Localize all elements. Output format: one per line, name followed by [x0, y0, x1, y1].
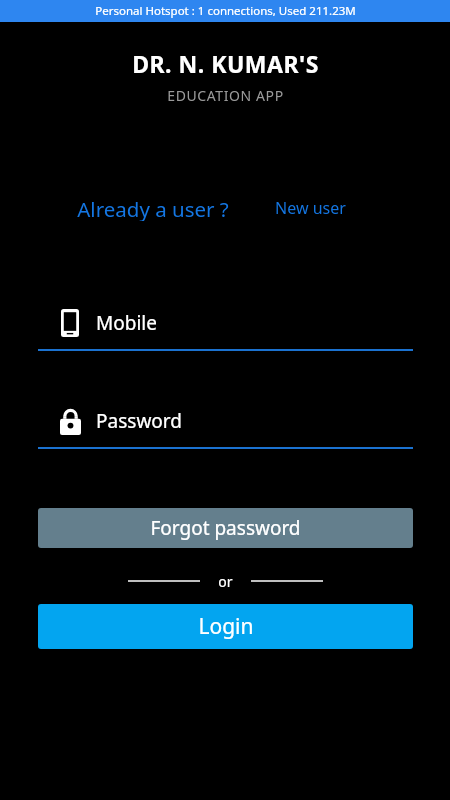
staticText: Personal Hotspot : 1 connections, Used 2… — [95, 3, 356, 19]
button[interactable]: Password — [38, 399, 413, 443]
staticText: Already a user ? — [77, 195, 229, 221]
button[interactable]: Already a user ? — [75, 191, 231, 225]
staticText: New user — [275, 197, 346, 219]
staticText: DR. N. KUMAR'S — [132, 48, 319, 79]
button[interactable]: Login — [38, 604, 413, 649]
other: Mobile number — [61, 309, 79, 337]
staticText: Password — [96, 408, 182, 434]
staticText: Forgot password — [150, 515, 301, 541]
staticText: Mobile — [96, 310, 157, 336]
button[interactable]: New user — [273, 193, 348, 223]
other: Password — [60, 408, 81, 435]
button[interactable]: Mobile number — [38, 301, 413, 345]
button[interactable]: Forgot password — [38, 508, 413, 548]
staticText: EDUCATION APP — [167, 86, 284, 105]
staticText: Login — [198, 612, 254, 641]
staticText: or — [218, 572, 233, 591]
